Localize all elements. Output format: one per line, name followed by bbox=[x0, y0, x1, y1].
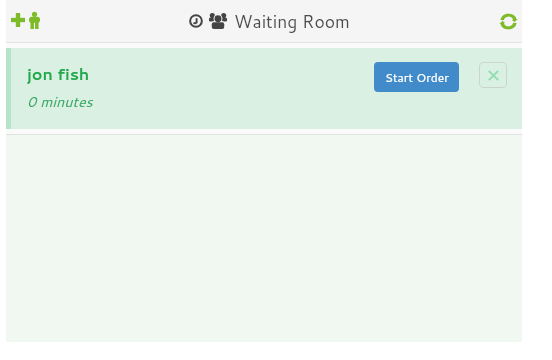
staticText: jon fish bbox=[27, 62, 90, 85]
staticText: Waiting Room bbox=[234, 9, 350, 34]
button[interactable]: Remove patient bbox=[479, 62, 507, 88]
button[interactable]: Start Order bbox=[374, 62, 459, 92]
button[interactable]: Refresh bbox=[495, 6, 521, 36]
button[interactable]: jon fish bbox=[6, 48, 522, 129]
staticText: 0 minutes bbox=[27, 91, 93, 112]
staticText: Start Order bbox=[385, 69, 449, 86]
button[interactable]: Add patient bbox=[8, 11, 40, 29]
